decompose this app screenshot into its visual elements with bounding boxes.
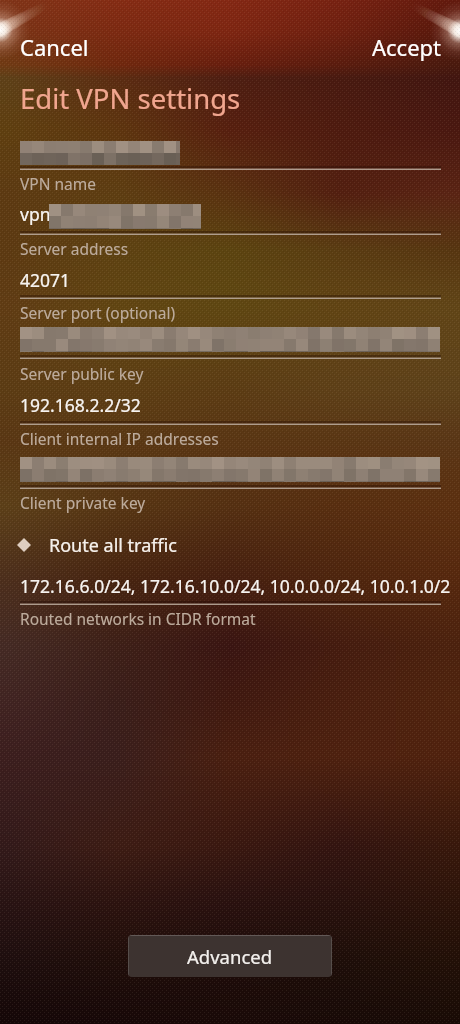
staticText: Client internal IP addresses <box>20 428 219 449</box>
button[interactable]: Accept <box>340 24 460 70</box>
staticText: Client private key <box>20 492 146 513</box>
staticText: Cancel <box>20 32 89 62</box>
staticText: Server port (optional) <box>20 302 176 323</box>
staticText: Accept <box>372 32 442 62</box>
button[interactable]: Route all traffic <box>12 527 212 563</box>
button[interactable]: Advanced <box>128 935 332 977</box>
other: Route all traffic <box>12 533 36 557</box>
staticText: 172.16.6.0/24, 172.16.10.0/24, 10.0.0.0/… <box>20 574 456 598</box>
staticText: 192.168.2.2/32 <box>20 393 141 417</box>
staticText: Routed networks in CIDR format <box>20 608 256 629</box>
staticText: VPN name <box>20 173 96 194</box>
staticText: 42071 <box>20 268 71 292</box>
staticText: Edit VPN settings <box>20 80 241 117</box>
staticText: Server address <box>20 238 129 259</box>
staticText: Advanced <box>187 944 273 969</box>
staticText: Server public key <box>20 363 144 384</box>
staticText: vpn <box>20 202 51 226</box>
button[interactable]: Cancel <box>0 24 120 70</box>
staticText: Route all traffic <box>49 533 177 558</box>
